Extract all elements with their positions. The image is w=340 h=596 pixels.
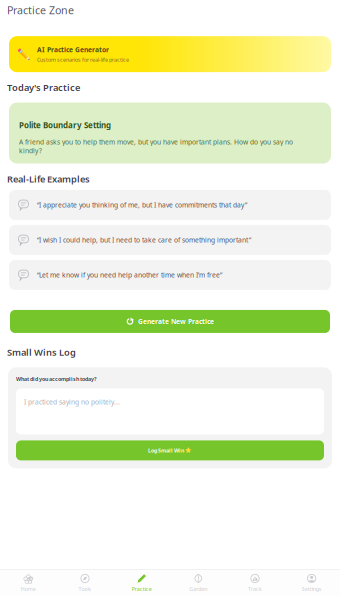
staticText: “I appreciate you thinking of me, but I … [37, 200, 247, 209]
staticText: AI Practice Generator [37, 45, 109, 54]
button[interactable]: Practice [113, 573, 170, 593]
staticText: ✏️ [17, 48, 30, 60]
staticText: Garden [189, 585, 207, 593]
staticText: Tools [78, 585, 91, 593]
staticText: Generate New Practice [138, 317, 214, 326]
staticText: Today's Practice [7, 81, 80, 94]
staticText: Real-Life Examples [7, 173, 90, 185]
staticText: What did you accomplish today? [16, 375, 97, 382]
staticText: Settings [302, 585, 322, 593]
staticText: “Let me know if you need help another ti… [37, 270, 222, 279]
staticText: A friend asks you to help them move, but… [19, 137, 293, 146]
button[interactable]: Tools [57, 573, 113, 593]
staticText: “I wish I could help, but I need to take… [37, 235, 251, 244]
button[interactable]: ✏️ [9, 36, 331, 72]
staticText: Custom scenarios for real-life practice [37, 56, 129, 63]
staticText: Home [21, 585, 36, 593]
button[interactable]: Generate New Practice [10, 310, 330, 333]
staticText: Small Wins Log [7, 346, 76, 358]
staticText: I practiced saying no politely... [24, 397, 120, 406]
button[interactable]: Log Small Win ⭐ [16, 440, 324, 460]
button[interactable]: Home [0, 573, 57, 593]
button[interactable]: Garden [170, 573, 227, 593]
button[interactable]: Track [227, 573, 283, 593]
button[interactable]: Settings [283, 573, 340, 593]
staticText: Practice [132, 585, 152, 593]
staticText: Log Small Win ⭐ [148, 447, 192, 454]
staticText: Track [248, 585, 262, 593]
staticText: Polite Boundary Setting [19, 120, 111, 130]
staticText: Practice Zone [7, 3, 74, 17]
